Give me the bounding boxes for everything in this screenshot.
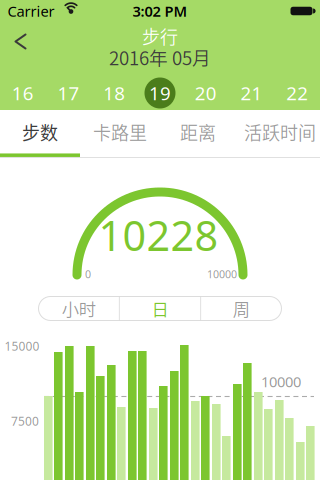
button[interactable]: 18	[91, 75, 137, 111]
button[interactable]: 小时	[38, 296, 119, 321]
staticText: 10228	[98, 208, 218, 262]
staticText: 3:02 PM	[132, 1, 187, 21]
staticText: 10000	[261, 372, 301, 391]
button[interactable]: 16	[0, 75, 46, 111]
button[interactable]: 活跃时间	[240, 110, 320, 154]
staticText: 0	[85, 267, 91, 281]
staticText: 20	[195, 81, 217, 105]
staticText: 10000	[207, 267, 237, 281]
button[interactable]: Back	[5, 26, 35, 56]
staticText: 7500	[11, 413, 39, 429]
staticText: Carrier	[7, 1, 54, 21]
button[interactable]: 卡路里	[80, 110, 160, 154]
button[interactable]: 19	[137, 75, 183, 111]
staticText: 小时	[62, 296, 96, 321]
staticText: 15000	[4, 338, 39, 354]
button[interactable]: 20	[183, 75, 229, 111]
staticText: 19	[149, 81, 171, 105]
staticText: 周	[233, 296, 250, 321]
staticText: 距离	[180, 119, 216, 145]
button[interactable]: 17	[46, 75, 91, 111]
button[interactable]: 周	[201, 296, 282, 321]
staticText: 活跃时间	[244, 119, 316, 145]
staticText: 步行	[142, 23, 178, 49]
staticText: 步数	[22, 119, 58, 145]
staticText: 16	[12, 81, 34, 105]
button[interactable]: 距离	[158, 110, 238, 154]
staticText: 2016年 05月	[109, 43, 211, 70]
staticText: 17	[58, 81, 80, 105]
staticText: 22	[286, 81, 308, 105]
staticText: 18	[103, 81, 125, 105]
button[interactable]: 步数	[0, 110, 80, 154]
button[interactable]: 21	[229, 75, 274, 111]
button[interactable]: 22	[274, 75, 320, 111]
staticText: 日	[151, 296, 168, 321]
staticText: 卡路里	[93, 119, 147, 145]
staticText: 21	[240, 81, 262, 105]
button[interactable]: 日	[119, 296, 200, 321]
